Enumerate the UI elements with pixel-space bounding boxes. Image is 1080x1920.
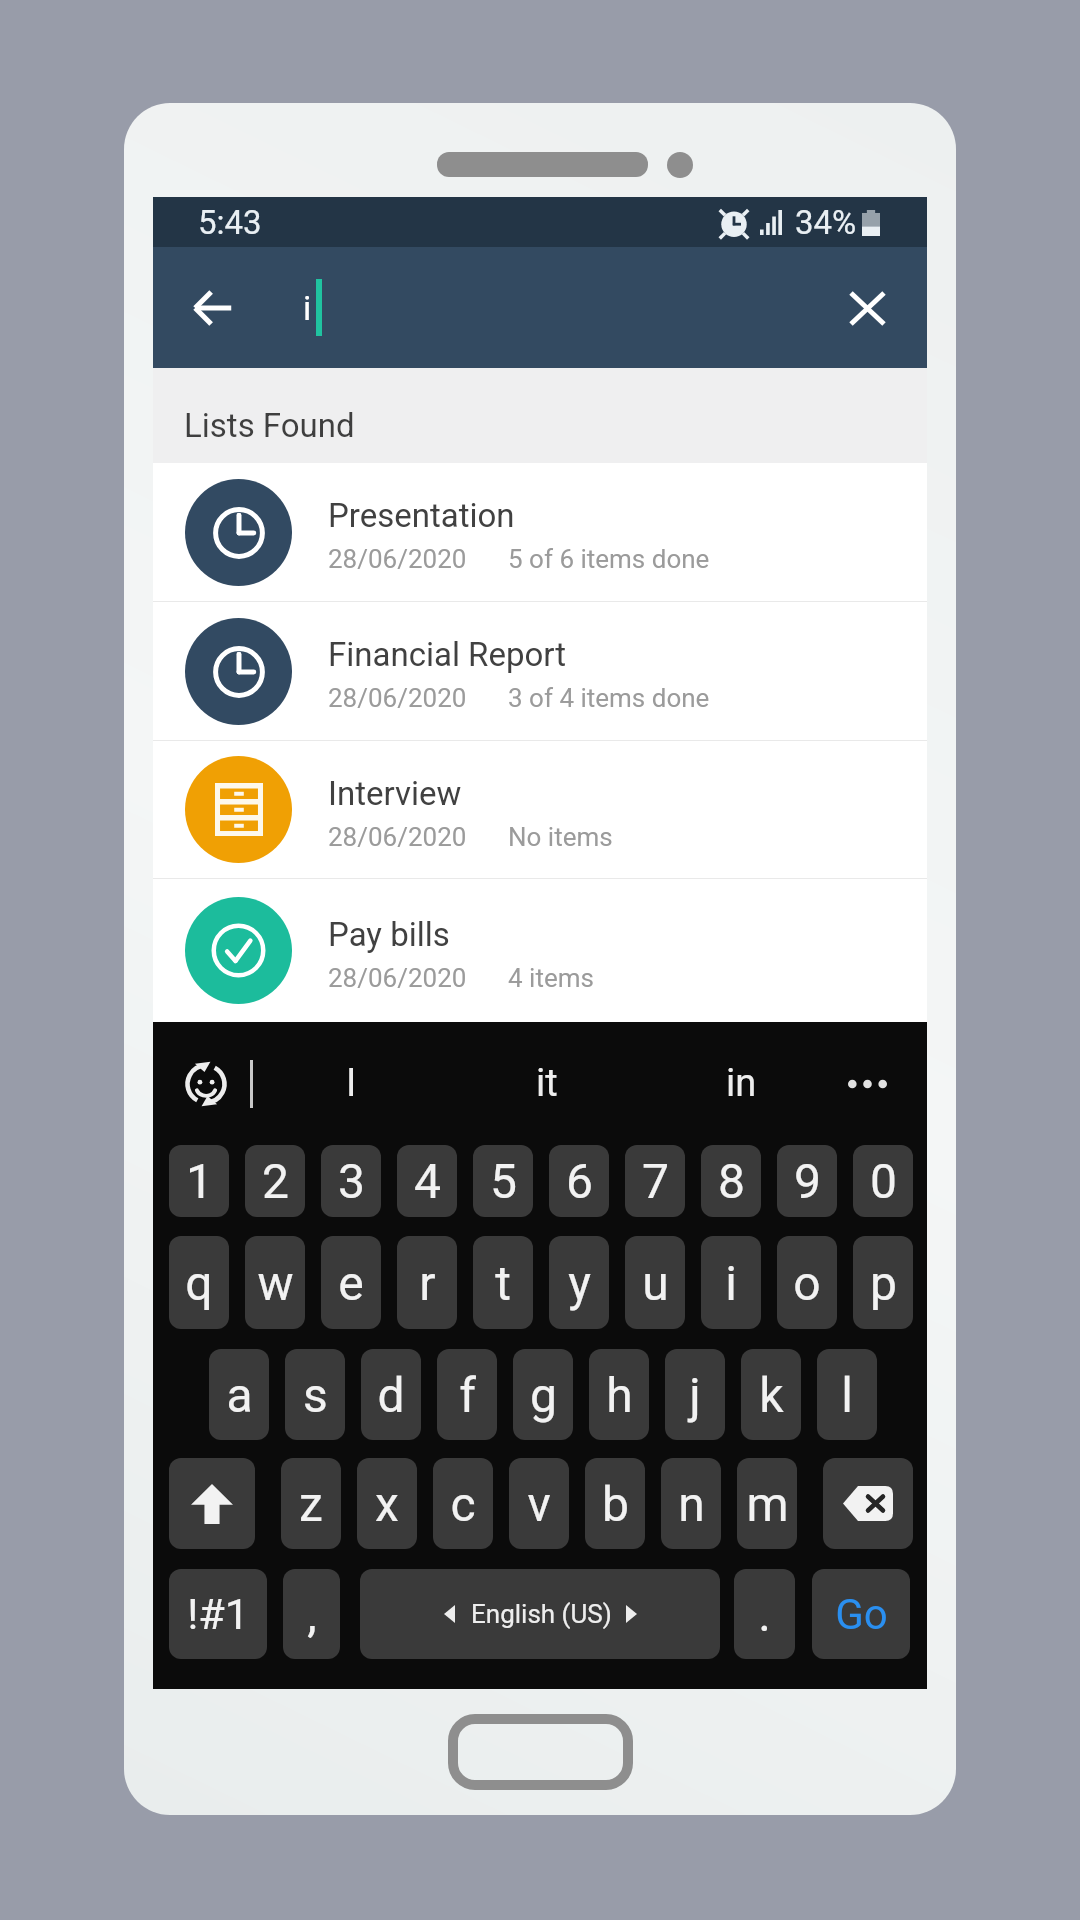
staticText: !#1: [187, 1589, 249, 1639]
button[interactable]: ,: [283, 1569, 340, 1659]
button[interactable]: b: [585, 1458, 645, 1549]
staticText: ,: [307, 1586, 317, 1642]
button[interactable]: 0: [853, 1145, 913, 1217]
button[interactable]: a: [209, 1349, 269, 1440]
staticText: u: [642, 1255, 669, 1311]
button[interactable]: Emoji: [180, 1058, 232, 1110]
button[interactable]: r: [397, 1236, 457, 1329]
button[interactable]: n: [661, 1458, 721, 1549]
button[interactable]: Interview: [153, 741, 927, 878]
button[interactable]: Go: [812, 1569, 910, 1659]
button[interactable]: q: [169, 1236, 229, 1329]
button[interactable]: Back: [173, 263, 253, 353]
button[interactable]: s: [285, 1349, 345, 1440]
button[interactable]: 4: [397, 1145, 457, 1217]
button[interactable]: I: [320, 1051, 383, 1116]
button[interactable]: 7: [625, 1145, 685, 1217]
staticText: No items: [508, 822, 613, 852]
button[interactable]: Pay bills: [153, 879, 927, 1022]
button[interactable]: t: [473, 1236, 533, 1329]
staticText: it: [536, 1061, 558, 1106]
staticText: p: [870, 1255, 897, 1311]
button[interactable]: g: [513, 1349, 573, 1440]
staticText: Go: [835, 1590, 888, 1639]
staticText: 3 of 4 items done: [508, 683, 710, 713]
staticText: j: [689, 1367, 701, 1423]
staticText: English (US): [471, 1599, 612, 1629]
button[interactable]: j: [665, 1349, 725, 1440]
staticText: i: [303, 288, 312, 328]
staticText: e: [338, 1255, 364, 1311]
button[interactable]: i: [701, 1236, 761, 1329]
staticText: Lists Found: [184, 406, 355, 445]
button[interactable]: 6: [549, 1145, 609, 1217]
staticText: d: [377, 1367, 405, 1423]
staticText: I: [346, 1061, 357, 1106]
button[interactable]: 2: [245, 1145, 305, 1217]
staticText: a: [226, 1367, 253, 1423]
staticText: m: [746, 1476, 789, 1532]
staticText: 9: [794, 1153, 821, 1209]
button[interactable]: !#1: [169, 1569, 267, 1659]
staticText: w: [257, 1255, 294, 1311]
button[interactable]: p: [853, 1236, 913, 1329]
button[interactable]: 5: [473, 1145, 533, 1217]
staticText: 28/06/2020: [328, 963, 467, 993]
staticText: c: [450, 1476, 476, 1532]
button[interactable]: Presentation: [153, 463, 927, 601]
button[interactable]: Financial Report: [153, 602, 927, 740]
staticText: 4 items: [508, 963, 594, 993]
button[interactable]: .: [734, 1569, 795, 1659]
staticText: v: [527, 1476, 551, 1532]
button[interactable]: l: [817, 1349, 877, 1440]
button[interactable]: c: [433, 1458, 493, 1549]
staticText: Pay bills: [328, 915, 450, 954]
staticText: h: [606, 1367, 633, 1423]
staticText: i: [725, 1255, 737, 1311]
button[interactable]: Clear search: [832, 263, 902, 353]
button[interactable]: h: [589, 1349, 649, 1440]
staticText: z: [299, 1476, 323, 1532]
button[interactable]: d: [361, 1349, 421, 1440]
staticText: x: [375, 1476, 399, 1532]
staticText: t: [495, 1255, 511, 1311]
staticText: g: [530, 1367, 557, 1423]
staticText: 8: [718, 1153, 745, 1209]
button[interactable]: y: [549, 1236, 609, 1329]
button[interactable]: in: [700, 1051, 783, 1116]
staticText: Financial Report: [328, 635, 567, 674]
staticText: 34%: [795, 203, 857, 242]
button[interactable]: Shift: [169, 1458, 255, 1549]
button[interactable]: More options: [839, 1056, 895, 1112]
button[interactable]: 9: [777, 1145, 837, 1217]
button[interactable]: u: [625, 1236, 685, 1329]
button[interactable]: e: [321, 1236, 381, 1329]
staticText: 28/06/2020: [328, 544, 467, 574]
button[interactable]: z: [281, 1458, 341, 1549]
button[interactable]: it: [510, 1051, 584, 1116]
button[interactable]: Backspace: [823, 1458, 913, 1549]
staticText: 4: [414, 1153, 441, 1209]
staticText: 5: [490, 1153, 517, 1209]
button[interactable]: f: [437, 1349, 497, 1440]
staticText: 2: [262, 1153, 289, 1209]
staticText: 28/06/2020: [328, 822, 467, 852]
staticText: y: [568, 1255, 591, 1311]
button[interactable]: 8: [701, 1145, 761, 1217]
button[interactable]: 1: [169, 1145, 229, 1217]
button[interactable]: v: [509, 1458, 569, 1549]
staticText: n: [678, 1476, 705, 1532]
staticText: o: [793, 1255, 821, 1311]
staticText: q: [185, 1255, 213, 1311]
button[interactable]: m: [737, 1458, 797, 1549]
staticText: f: [459, 1367, 476, 1423]
button[interactable]: English (US): [360, 1569, 720, 1659]
button[interactable]: w: [245, 1236, 305, 1329]
staticText: r: [419, 1255, 436, 1311]
staticText: .: [758, 1586, 771, 1642]
button[interactable]: x: [357, 1458, 417, 1549]
button[interactable]: k: [741, 1349, 801, 1440]
staticText: 3: [338, 1153, 365, 1209]
button[interactable]: 3: [321, 1145, 381, 1217]
button[interactable]: o: [777, 1236, 837, 1329]
